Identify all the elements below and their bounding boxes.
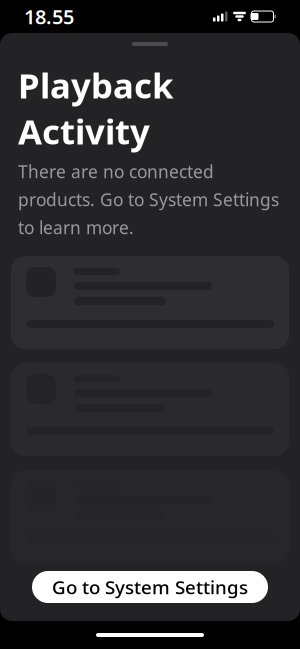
staticText: Go to System Settings — [52, 575, 248, 599]
staticText: 18.55 — [24, 3, 74, 30]
button[interactable]: Go to System Settings — [32, 571, 268, 603]
staticText: There are no connected products. Go to S… — [18, 160, 279, 239]
staticText: Playback Activity — [18, 62, 173, 154]
